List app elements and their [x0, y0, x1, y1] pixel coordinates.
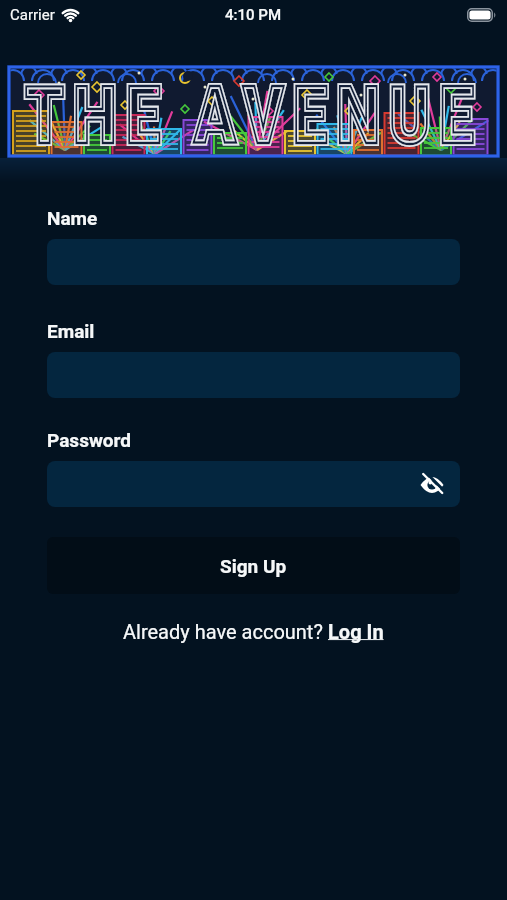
- staticText: THE AVENUE: [25, 69, 483, 162]
- staticText: Password: [47, 429, 132, 451]
- button[interactable]: Log In: [328, 620, 384, 643]
- button[interactable]: Sign Up: [47, 537, 460, 594]
- button[interactable]: [47, 461, 460, 507]
- staticText: Already have account?: [123, 620, 328, 643]
- staticText: Email: [47, 320, 95, 342]
- staticText: 4:10 PM: [225, 6, 282, 24]
- staticText: Carrier: [10, 6, 55, 24]
- staticText: Log In: [328, 620, 384, 643]
- staticText: Sign Up: [220, 555, 287, 577]
- staticText: THE AVENUE: [25, 69, 483, 162]
- staticText: Name: [47, 207, 98, 229]
